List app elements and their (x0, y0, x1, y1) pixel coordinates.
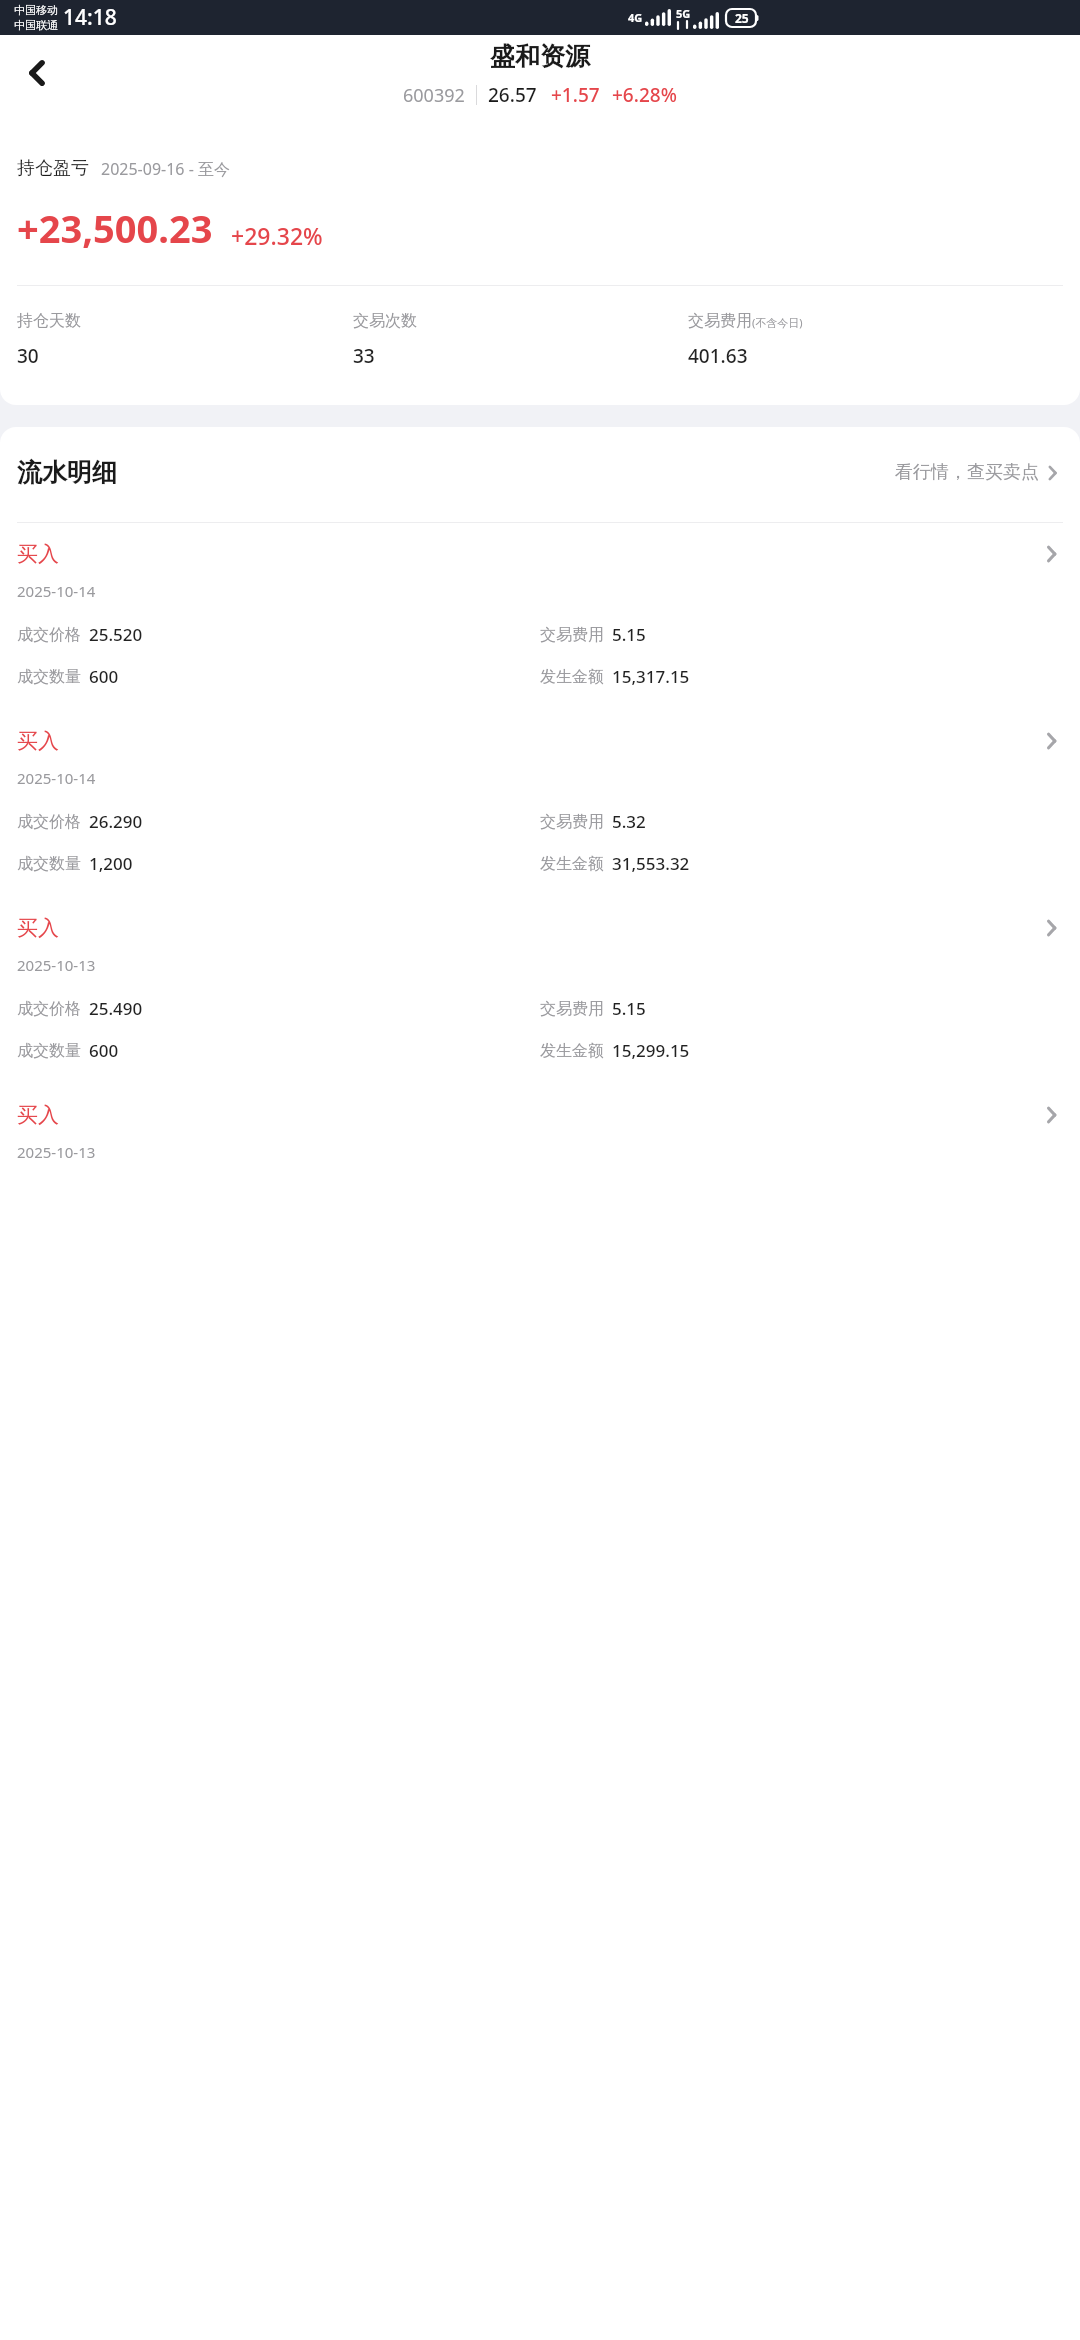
staticText: 4G (628, 10, 643, 25)
staticText: 买入 (17, 728, 59, 754)
staticText: 成交数量 (17, 854, 81, 874)
staticText: 发生金额 (540, 854, 604, 874)
staticText: 15,317.15 (612, 665, 690, 688)
staticText: 1,200 (89, 852, 133, 875)
staticText: 600392 (403, 83, 465, 108)
staticText: 5.15 (612, 623, 646, 646)
staticText: 600 (89, 1039, 119, 1062)
staticText: 2025-09-16 - 至今 (101, 158, 230, 180)
button[interactable]: 买入 (0, 710, 1080, 897)
button[interactable]: Back (10, 45, 66, 101)
staticText: 30 (17, 343, 39, 369)
staticText: 流水明细 (17, 457, 117, 488)
button[interactable]: 买入 (0, 897, 1080, 1084)
button[interactable]: 买入 (0, 1084, 1080, 1162)
staticText: 26.290 (89, 810, 143, 833)
staticText: 交易次数 (353, 311, 417, 331)
button[interactable]: 买入 (0, 523, 1080, 710)
staticText: 盛和资源 (490, 41, 590, 72)
staticText: 中国移动 (14, 3, 58, 17)
staticText: 交易费用 (540, 812, 604, 832)
staticText: +6.28% (612, 82, 677, 108)
staticText: 买入 (17, 541, 59, 567)
staticText: 600 (89, 665, 119, 688)
staticText: 15,299.15 (612, 1039, 690, 1062)
staticText: 交易费用 (540, 625, 604, 645)
staticText: 26.57 (488, 82, 537, 108)
staticText: 25.490 (89, 997, 143, 1020)
staticText: +23,500.23 (17, 202, 213, 254)
staticText: 持仓盈亏 (17, 157, 89, 180)
staticText: 25.520 (89, 623, 143, 646)
staticText: 发生金额 (540, 667, 604, 687)
staticText: 成交数量 (17, 667, 81, 687)
staticText: 成交价格 (17, 999, 81, 1019)
staticText: 中国联通 (14, 18, 58, 32)
staticText: +1.57 (551, 82, 600, 108)
staticText: 31,553.32 (612, 852, 690, 875)
staticText: 5.32 (612, 810, 646, 833)
staticText: 持仓天数 (17, 311, 81, 331)
staticText: 发生金额 (540, 1041, 604, 1061)
staticText: 2025-10-14 (17, 768, 96, 788)
staticText: (不含今日) (752, 315, 803, 330)
staticText: 买入 (17, 1102, 59, 1128)
staticText: 33 (353, 343, 375, 369)
staticText: +29.32% (231, 220, 323, 251)
staticText: 交易费用 (540, 999, 604, 1019)
staticText: 5G (676, 6, 691, 21)
button[interactable]: 看行情，查买卖点 (895, 461, 1063, 484)
staticText: 5.15 (612, 997, 646, 1020)
staticText: 成交价格 (17, 812, 81, 832)
staticText: 14:18 (63, 3, 117, 32)
staticText: 401.63 (688, 343, 748, 369)
staticText: 2025-10-13 (17, 1142, 96, 1162)
staticText: 成交价格 (17, 625, 81, 645)
staticText: 25 (735, 10, 749, 26)
staticText: 2025-10-13 (17, 955, 96, 975)
staticText: 2025-10-14 (17, 581, 96, 601)
staticText: 成交数量 (17, 1041, 81, 1061)
staticText: 看行情，查买卖点 (895, 461, 1039, 484)
staticText: 交易费用 (688, 311, 752, 331)
staticText: 买入 (17, 915, 59, 941)
